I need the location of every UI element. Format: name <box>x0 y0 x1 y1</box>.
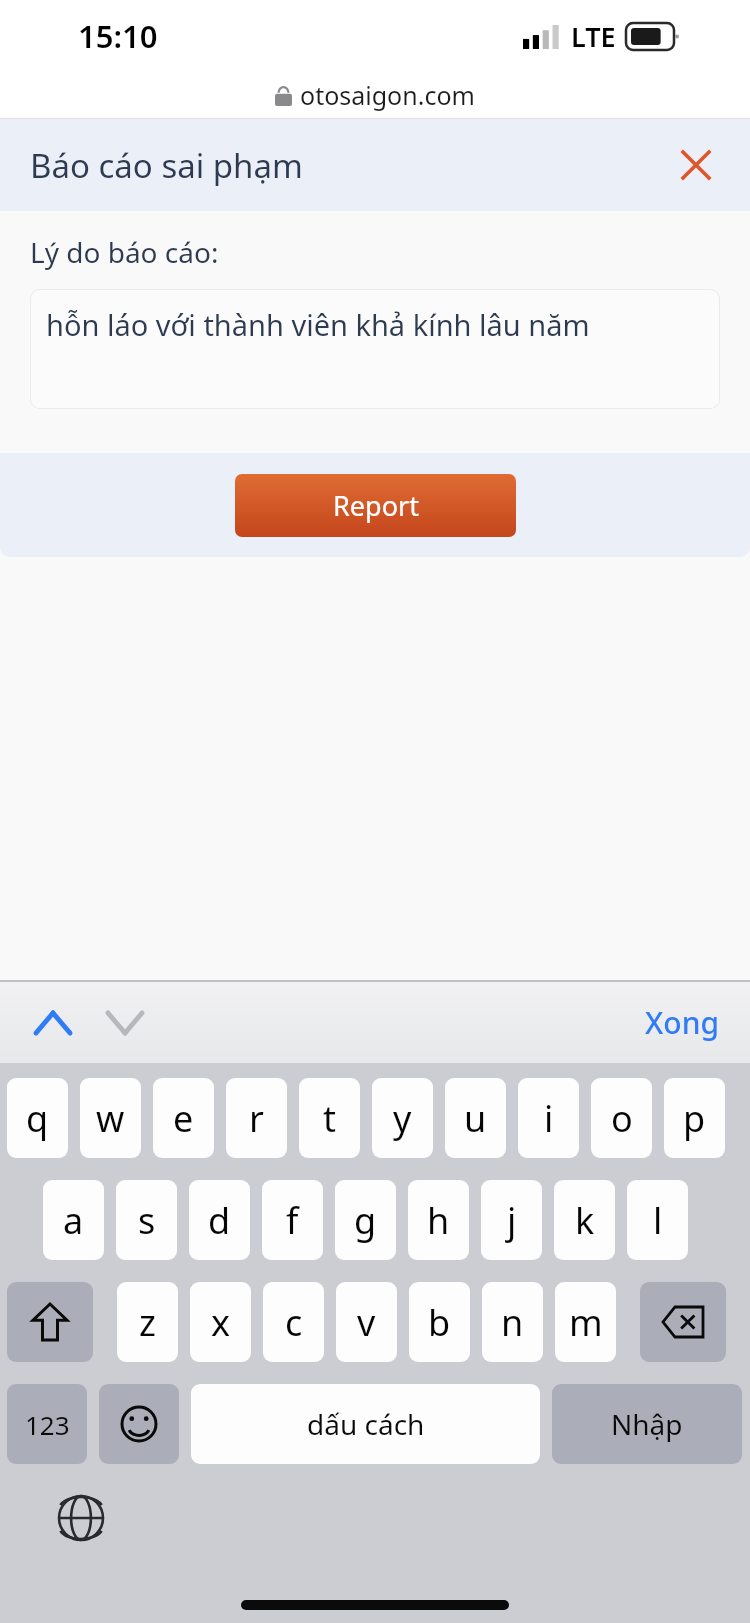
button[interactable]: d <box>189 1180 250 1260</box>
button[interactable]: z <box>117 1282 178 1362</box>
staticText: d <box>208 1196 231 1245</box>
staticText: u <box>464 1094 487 1143</box>
staticText: hỗn láo với thành viên khả kính lâu năm <box>46 305 590 344</box>
staticText: g <box>354 1196 377 1245</box>
staticText: j <box>507 1196 517 1245</box>
staticText: t <box>323 1094 336 1143</box>
staticText: i <box>544 1094 554 1143</box>
button[interactable]: f <box>262 1180 323 1260</box>
button[interactable]: Trường sau <box>94 992 156 1054</box>
button[interactable]: r <box>226 1078 287 1158</box>
staticText: LTE <box>571 18 616 55</box>
button[interactable]: Shift <box>7 1282 93 1362</box>
button[interactable]: s <box>116 1180 177 1260</box>
staticText: l <box>653 1196 663 1245</box>
button[interactable]: x <box>190 1282 251 1362</box>
staticText: Báo cáo sai phạm <box>30 143 303 188</box>
button[interactable]: Report <box>235 474 516 537</box>
button[interactable]: t <box>299 1078 360 1158</box>
staticText: v <box>357 1298 376 1347</box>
staticText: o <box>611 1094 633 1143</box>
staticText: e <box>173 1094 194 1143</box>
staticText: n <box>501 1298 524 1347</box>
staticText: r <box>249 1094 264 1143</box>
button[interactable]: Trường trước <box>22 992 84 1054</box>
button[interactable]: dấu cách <box>191 1384 540 1464</box>
staticText: Xong <box>645 1002 720 1043</box>
button[interactable]: m <box>555 1282 616 1362</box>
button[interactable]: Xong <box>637 994 728 1051</box>
button[interactable]: p <box>664 1078 725 1158</box>
staticText: Report <box>333 487 419 524</box>
staticText: k <box>575 1196 595 1245</box>
button[interactable]: l <box>627 1180 688 1260</box>
staticText: 15:10 <box>78 15 158 57</box>
staticText: m <box>569 1298 603 1347</box>
button[interactable]: q <box>7 1078 68 1158</box>
button[interactable]: Xóa <box>640 1282 726 1362</box>
staticText: q <box>26 1094 49 1143</box>
staticText: w <box>96 1094 125 1143</box>
button[interactable]: c <box>263 1282 324 1362</box>
staticText: 123 <box>25 1407 70 1442</box>
button[interactable]: w <box>80 1078 141 1158</box>
staticText: f <box>286 1196 299 1245</box>
staticText: y <box>393 1094 412 1143</box>
button[interactable]: otosaigon.com <box>275 78 475 112</box>
button[interactable]: Đổi bàn phím <box>55 1492 107 1544</box>
staticText: a <box>63 1196 84 1245</box>
staticText: Lý do báo cáo: <box>30 233 219 271</box>
staticText: b <box>428 1298 451 1347</box>
button[interactable]: b <box>409 1282 470 1362</box>
staticText: c <box>285 1298 303 1347</box>
button[interactable]: k <box>554 1180 615 1260</box>
button[interactable]: j <box>481 1180 542 1260</box>
staticText: x <box>211 1298 231 1347</box>
button[interactable]: y <box>372 1078 433 1158</box>
button[interactable]: u <box>445 1078 506 1158</box>
staticText: otosaigon.com <box>300 78 475 112</box>
button[interactable]: 123 <box>7 1384 87 1464</box>
button[interactable]: hỗn láo với thành viên khả kính lâu năm <box>30 289 720 409</box>
button[interactable]: n <box>482 1282 543 1362</box>
button[interactable]: Nhập <box>552 1384 742 1464</box>
staticText: z <box>139 1298 156 1347</box>
staticText: p <box>683 1094 706 1143</box>
button[interactable]: Đóng <box>670 139 722 191</box>
button[interactable]: e <box>153 1078 214 1158</box>
button[interactable]: o <box>591 1078 652 1158</box>
button[interactable]: Biểu tượng cảm xúc <box>99 1384 179 1464</box>
button[interactable]: h <box>408 1180 469 1260</box>
button[interactable]: i <box>518 1078 579 1158</box>
button[interactable]: a <box>43 1180 104 1260</box>
button[interactable]: g <box>335 1180 396 1260</box>
staticText: h <box>427 1196 450 1245</box>
staticText: s <box>138 1196 156 1245</box>
button[interactable]: v <box>336 1282 397 1362</box>
staticText: Nhập <box>611 1405 683 1443</box>
staticText: dấu cách <box>307 1405 425 1443</box>
